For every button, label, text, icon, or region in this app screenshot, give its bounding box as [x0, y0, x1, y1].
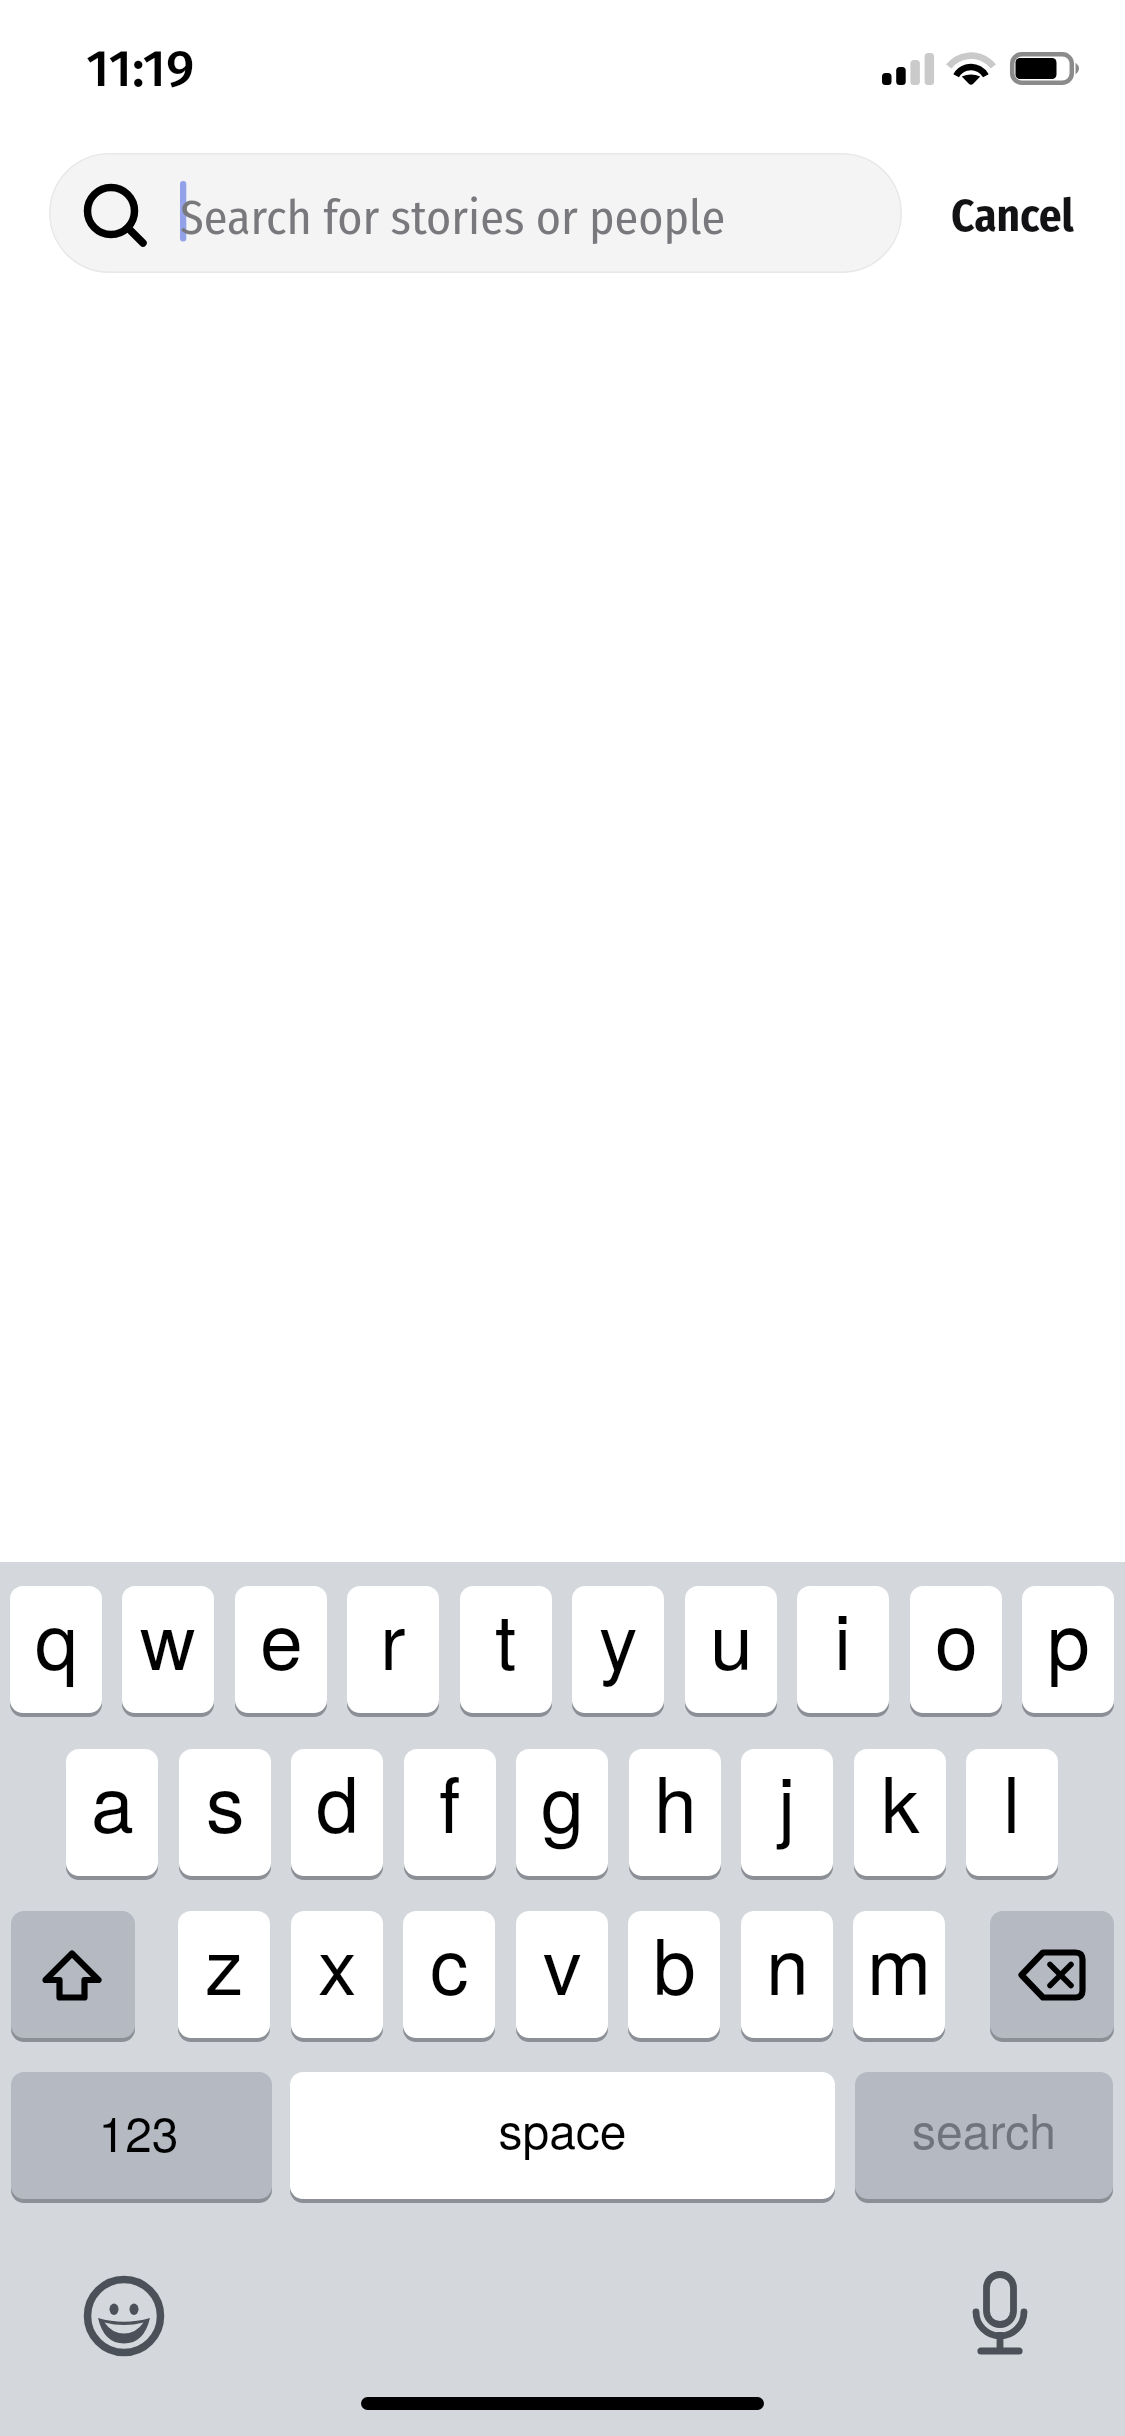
staticText: u — [710, 1586, 753, 1692]
button[interactable]: i — [797, 1586, 889, 1713]
staticText: c — [430, 1911, 469, 2017]
staticText: v — [543, 1911, 582, 2017]
staticText: Search for stories or people — [180, 189, 726, 247]
button[interactable]: y — [572, 1586, 664, 1713]
button[interactable]: Dictation — [960, 2268, 1040, 2358]
staticText: x — [318, 1911, 357, 2017]
staticText: s — [206, 1749, 245, 1855]
staticText: z — [205, 1911, 244, 2017]
button[interactable]: w — [122, 1586, 214, 1713]
button[interactable]: g — [516, 1749, 608, 1876]
staticText: space — [498, 2094, 627, 2163]
staticText: b — [653, 1911, 696, 2017]
button[interactable]: space — [290, 2072, 835, 2199]
staticText: i — [834, 1586, 852, 1692]
staticText: n — [766, 1911, 809, 2017]
button[interactable]: j — [741, 1749, 833, 1876]
button[interactable]: v — [516, 1911, 608, 2038]
button[interactable]: r — [347, 1586, 439, 1713]
button[interactable]: Cancel — [951, 189, 1074, 243]
button[interactable]: k — [854, 1749, 946, 1876]
staticText: g — [541, 1749, 584, 1855]
button[interactable]: s — [179, 1749, 271, 1876]
staticText: w — [140, 1586, 196, 1692]
button[interactable]: d — [291, 1749, 383, 1876]
button[interactable]: x — [291, 1911, 383, 2038]
button[interactable]: q — [10, 1586, 102, 1713]
button[interactable]: t — [460, 1586, 552, 1713]
button[interactable]: m — [853, 1911, 945, 2038]
staticText: 11:19 — [86, 37, 195, 99]
staticText: a — [91, 1749, 134, 1855]
button[interactable]: h — [629, 1749, 721, 1876]
button[interactable]: l — [966, 1749, 1058, 1876]
button[interactable]: n — [741, 1911, 833, 2038]
button[interactable]: search — [855, 2072, 1113, 2199]
staticText: l — [1003, 1749, 1021, 1855]
button[interactable]: e — [235, 1586, 327, 1713]
button[interactable]: Backspace — [990, 1911, 1114, 2038]
staticText: 123 — [98, 2097, 179, 2166]
staticText: q — [35, 1586, 78, 1692]
button[interactable]: b — [628, 1911, 720, 2038]
staticText: m — [867, 1911, 932, 2017]
staticText: j — [778, 1749, 796, 1855]
button[interactable]: u — [685, 1586, 777, 1713]
staticText: k — [881, 1749, 920, 1855]
staticText: f — [439, 1749, 461, 1855]
button[interactable]: Shift — [11, 1911, 135, 2038]
staticText: y — [599, 1586, 638, 1692]
button[interactable]: o — [910, 1586, 1002, 1713]
staticText: t — [495, 1586, 517, 1692]
button[interactable]: Emoji keyboard — [84, 2276, 164, 2356]
button[interactable]: p — [1022, 1586, 1114, 1713]
staticText: e — [260, 1586, 303, 1692]
staticText: Cancel — [951, 189, 1074, 243]
staticText: p — [1047, 1586, 1090, 1692]
staticText: h — [654, 1749, 697, 1855]
staticText: search — [912, 2094, 1056, 2163]
button[interactable]: z — [178, 1911, 270, 2038]
staticText: d — [316, 1749, 359, 1855]
staticText: r — [380, 1586, 406, 1692]
button[interactable]: c — [403, 1911, 495, 2038]
button[interactable]: 123 — [11, 2072, 272, 2199]
button[interactable]: a — [66, 1749, 158, 1876]
button[interactable]: Search for stories or people — [49, 153, 902, 273]
staticText: o — [935, 1586, 978, 1692]
button[interactable]: f — [404, 1749, 496, 1876]
